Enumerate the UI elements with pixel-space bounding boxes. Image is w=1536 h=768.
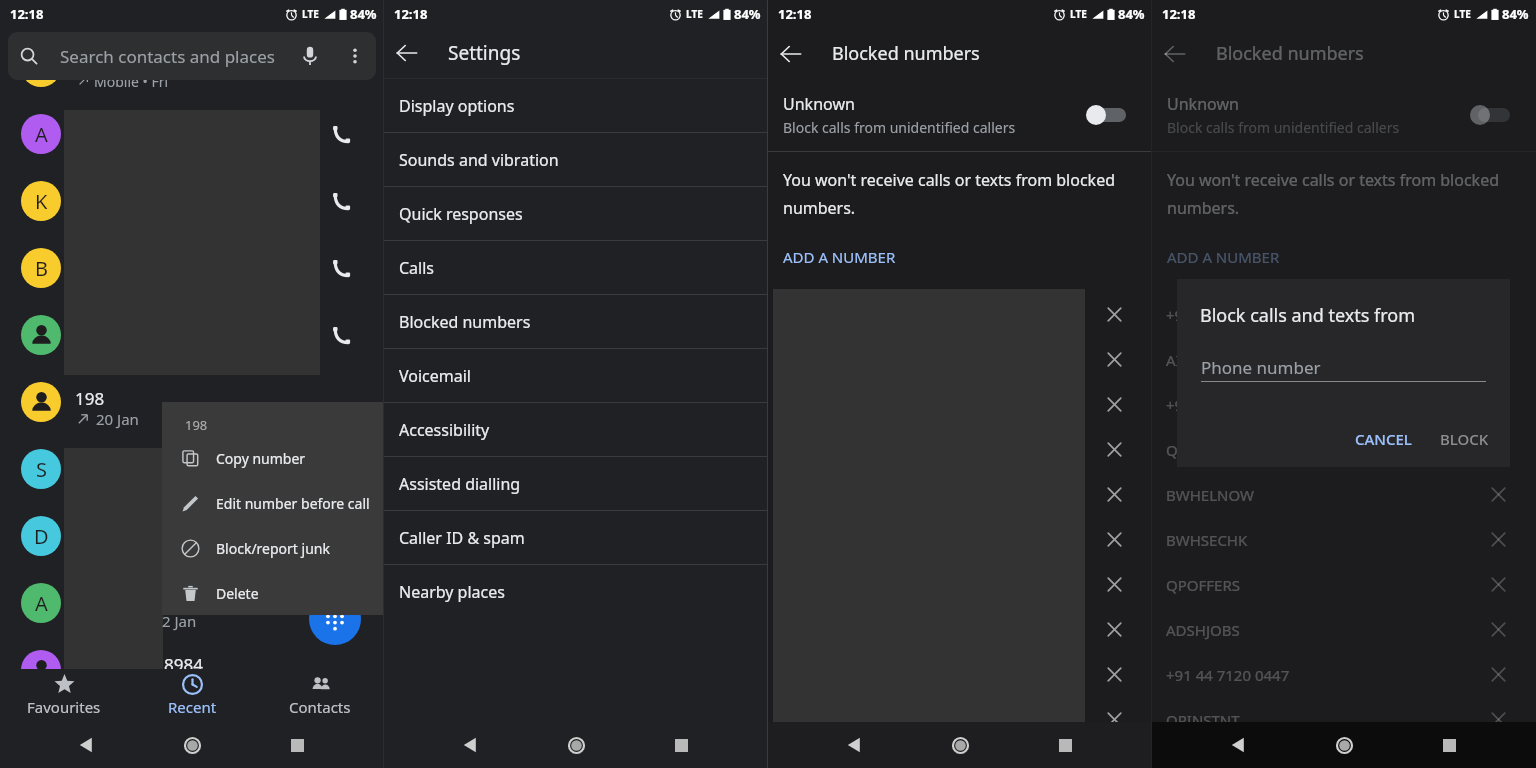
button[interactable]: AIRTEL [1152, 337, 1536, 382]
button[interactable]: Remove [1490, 666, 1507, 683]
button[interactable]: Display options [384, 79, 768, 133]
button[interactable]: Recents [663, 727, 699, 763]
button[interactable]: Remove [768, 517, 1152, 562]
button[interactable]: Back [1221, 727, 1257, 763]
button[interactable]: Remove [1490, 621, 1507, 638]
button[interactable]: Home [558, 727, 594, 763]
button[interactable]: Favourites [0, 669, 128, 722]
button[interactable]: Remove [1490, 576, 1507, 593]
button[interactable]: Remove [1106, 486, 1123, 503]
button[interactable]: Voicemail [384, 349, 768, 403]
button[interactable]: Block unknown callers [1086, 103, 1126, 127]
button[interactable]: Contacts [256, 669, 384, 722]
button[interactable]: Recents [279, 727, 315, 763]
button[interactable]: +91 80 6197 4567 [1152, 382, 1536, 427]
button[interactable]: Remove [1106, 711, 1123, 728]
button[interactable]: QPINSTNT [1152, 697, 1536, 742]
button[interactable]: Back [453, 727, 489, 763]
button[interactable]: Call [331, 124, 352, 145]
button[interactable]: Remove [768, 292, 1152, 337]
button[interactable]: Remove [1106, 621, 1123, 638]
button[interactable]: Quick responses [384, 187, 768, 241]
button[interactable]: ADD A NUMBER [783, 247, 896, 267]
button[interactable] [21, 315, 61, 355]
button[interactable]: Call [331, 258, 352, 279]
button[interactable]: Remove [768, 697, 1152, 742]
button[interactable]: K [21, 181, 61, 221]
button[interactable]: S [21, 449, 61, 489]
button[interactable]: Home [174, 727, 210, 763]
button[interactable]: Remove [768, 607, 1152, 652]
button[interactable]: Assisted dialling [384, 457, 768, 511]
button[interactable]: Recents [1047, 727, 1083, 763]
button[interactable]: Call [331, 191, 352, 212]
button[interactable]: Recent [128, 669, 256, 722]
button[interactable]: Call [331, 325, 352, 346]
button[interactable]: Unknown [768, 79, 1152, 151]
button[interactable]: +91 44 7120 0447 [1152, 652, 1536, 697]
button[interactable]: QPDROPS [1152, 427, 1536, 472]
button[interactable]: Sounds and vibration [384, 133, 768, 187]
button[interactable]: Remove [768, 382, 1152, 427]
button[interactable] [21, 650, 61, 690]
button[interactable]: Remove [768, 427, 1152, 472]
button[interactable]: Block/report junk [162, 526, 384, 571]
button[interactable]: Remove [1106, 666, 1123, 683]
button[interactable]: A [21, 114, 61, 154]
button[interactable]: Back [69, 727, 105, 763]
button[interactable]: Block unknown callers [1470, 103, 1510, 127]
button[interactable] [21, 47, 61, 87]
button[interactable]: Remove [1106, 576, 1123, 593]
button[interactable]: Blocked numbers [384, 295, 768, 349]
button[interactable]: Recents [1431, 727, 1467, 763]
button[interactable]: Remove [768, 337, 1152, 382]
button[interactable]: Search [8, 32, 376, 80]
button[interactable]: Remove [1106, 441, 1123, 458]
button[interactable]: ADSHJOBS [1152, 607, 1536, 652]
button[interactable]: Remove [1106, 531, 1123, 548]
button[interactable]: Dialpad [309, 593, 361, 645]
button[interactable]: Copy number [162, 436, 384, 481]
button[interactable]: Remove [1490, 531, 1507, 548]
button[interactable]: Home [942, 727, 978, 763]
button[interactable]: BLOCK [1432, 425, 1497, 453]
button[interactable]: Back [384, 30, 430, 76]
button[interactable]: Back [1152, 31, 1198, 77]
button[interactable]: BWHSECHK [1152, 517, 1536, 562]
button[interactable]: Remove [1106, 351, 1123, 368]
button[interactable]: B [21, 248, 61, 288]
staticText: ADD A NUMBER [783, 247, 896, 267]
button[interactable]: Remove [1490, 486, 1507, 503]
button[interactable]: Remove [1106, 306, 1123, 323]
button[interactable]: More options [346, 47, 364, 65]
button[interactable]: Delete [162, 571, 384, 615]
button[interactable]: Nearby places [384, 565, 768, 619]
button[interactable]: Remove [768, 472, 1152, 517]
button[interactable]: A [21, 583, 61, 623]
button[interactable]: Caller ID & spam [384, 511, 768, 565]
button[interactable] [21, 382, 61, 422]
button[interactable]: Remove [1490, 711, 1507, 728]
button[interactable]: Back [768, 31, 814, 77]
button[interactable]: D [21, 516, 61, 556]
button[interactable]: ADD A NUMBER [1167, 247, 1280, 267]
button[interactable]: Home [1326, 727, 1362, 763]
button[interactable]: Voice search [300, 46, 320, 66]
button[interactable]: Remove [768, 652, 1152, 697]
button[interactable]: BWHELNOW [1152, 472, 1536, 517]
button[interactable]: QPOFFERS [1152, 562, 1536, 607]
button[interactable]: Accessibility [384, 403, 768, 457]
button[interactable]: Remove [1106, 396, 1123, 413]
button[interactable]: Edit number before call [162, 481, 384, 526]
button[interactable]: CANCEL [1347, 425, 1420, 453]
button[interactable]: Remove [768, 562, 1152, 607]
button[interactable]: +91 40 4566 0103 [1152, 292, 1536, 337]
button[interactable]: Back [837, 727, 873, 763]
button[interactable]: Unknown [1152, 79, 1536, 151]
button[interactable]: Calls [384, 241, 768, 295]
button[interactable]: 198 [64, 380, 320, 442]
